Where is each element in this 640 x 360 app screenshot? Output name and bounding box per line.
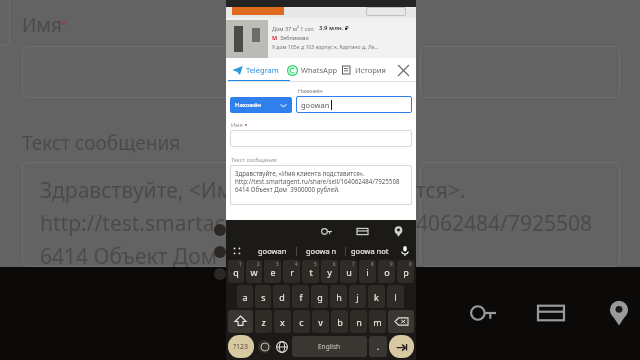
button[interactable]: goowan [296, 96, 412, 113]
staticText: goowan [258, 246, 287, 256]
button[interactable]: Card [352, 221, 372, 241]
staticText: f [299, 291, 303, 303]
button[interactable]: ?123 [228, 335, 254, 358]
button[interactable]: Voice input [394, 242, 416, 260]
staticText: . [377, 341, 380, 352]
staticText: Telegram [246, 65, 279, 75]
staticText: Имя [22, 12, 62, 38]
button[interactable]: Next [389, 335, 414, 358]
button[interactable]: Backspace [388, 310, 414, 333]
button[interactable]: b [331, 310, 348, 333]
staticText: m [373, 316, 382, 328]
other: Address [606, 300, 632, 326]
other: Password [470, 300, 496, 326]
staticText: WhatsApp [301, 65, 338, 75]
staticText: http://test.smartaç [40, 209, 225, 238]
staticText: 7 [352, 261, 355, 267]
staticText: u [346, 266, 352, 278]
button[interactable]: z [255, 310, 272, 333]
button[interactable]: Нахожён [230, 97, 292, 113]
button[interactable]: a [237, 285, 253, 308]
button[interactable]: f [292, 285, 309, 308]
staticText: English [318, 342, 341, 351]
button[interactable]: k [368, 285, 385, 308]
button[interactable]: Clipboard [226, 242, 248, 260]
button[interactable]: Здравствуйте, «Имя клиента подставится». [230, 165, 412, 205]
staticText: q [233, 266, 239, 278]
button[interactable]: Password [316, 221, 336, 241]
staticText: Здравствуйте, <Им [40, 176, 233, 205]
staticText: p [403, 266, 409, 278]
staticText: k [374, 291, 379, 303]
button[interactable]: y [321, 260, 338, 283]
button[interactable]: e [264, 260, 281, 283]
staticText: t [309, 266, 313, 278]
button[interactable]: j [349, 285, 366, 308]
staticText: n [356, 316, 362, 328]
staticText: w [250, 266, 258, 278]
button[interactable]: u [340, 260, 357, 283]
button[interactable]: Period [369, 336, 387, 357]
button[interactable]: s [255, 285, 271, 308]
staticText: j [356, 291, 359, 303]
staticText: 1 [239, 261, 242, 267]
staticText: ?123 [233, 342, 249, 352]
staticText: Здравствуйте, «Имя клиента подставится». [235, 169, 365, 177]
button[interactable]: i [359, 260, 376, 283]
staticText: 9 дом 105к д 103 корпус к, Картино д, Ле… [272, 43, 379, 50]
staticText: Имя [231, 121, 243, 128]
button[interactable]: История [342, 58, 394, 82]
staticText: goowa n [306, 246, 337, 256]
staticText: z [261, 316, 266, 328]
staticText: 5 [314, 261, 317, 267]
staticText: g [317, 291, 323, 303]
button[interactable]: l [387, 285, 404, 308]
button[interactable]: Address [388, 221, 408, 241]
staticText: Текст сообщения [22, 130, 181, 156]
staticText: y [327, 266, 332, 278]
button[interactable]: goowan [248, 242, 296, 260]
button[interactable]: p [397, 260, 414, 283]
button[interactable]: Close [394, 61, 412, 79]
button[interactable]: Change language [274, 335, 290, 358]
button[interactable]: Telegram [232, 58, 287, 82]
button[interactable]: n [350, 310, 367, 333]
button[interactable]: d [273, 285, 290, 308]
button[interactable]: h [330, 285, 347, 308]
staticText: i [366, 266, 369, 278]
button[interactable]: Emoji [256, 335, 272, 358]
staticText: goowa not [351, 246, 389, 256]
button[interactable]: WhatsApp [287, 58, 342, 82]
button[interactable]: goowa not [346, 242, 394, 260]
staticText: v [318, 316, 323, 328]
staticText: goowan [301, 100, 330, 110]
button[interactable]: v [312, 310, 329, 333]
button[interactable]: w [246, 260, 262, 283]
staticText: Нахожён [235, 101, 280, 109]
staticText: Дом 37 м² 1 сот. [272, 25, 315, 32]
button[interactable]: q [228, 260, 244, 283]
button[interactable]: m [369, 310, 386, 333]
staticText: 4062484/7925508 [416, 209, 592, 238]
button[interactable]: English [292, 336, 367, 357]
button[interactable]: r [283, 260, 300, 283]
button[interactable]: g [311, 285, 328, 308]
button[interactable]: o [378, 260, 395, 283]
button[interactable]: Shift [228, 310, 253, 333]
button[interactable]: t [302, 260, 319, 283]
staticText: Зябликово [280, 34, 309, 41]
button[interactable]: c [293, 310, 310, 333]
staticText: 6 [333, 261, 336, 267]
staticText: M [272, 34, 278, 41]
staticText: Нажожён [298, 87, 323, 94]
button[interactable] [230, 130, 412, 147]
staticText: l [394, 291, 397, 303]
staticText: r [290, 266, 294, 278]
staticText: 3.9 млн. ₽ [319, 24, 349, 32]
button[interactable]: goowa n [297, 242, 345, 260]
button[interactable]: x [274, 310, 291, 333]
staticText: x [280, 316, 285, 328]
staticText: c [299, 316, 304, 328]
staticText: d [279, 291, 285, 303]
staticText: 3 [276, 261, 279, 267]
